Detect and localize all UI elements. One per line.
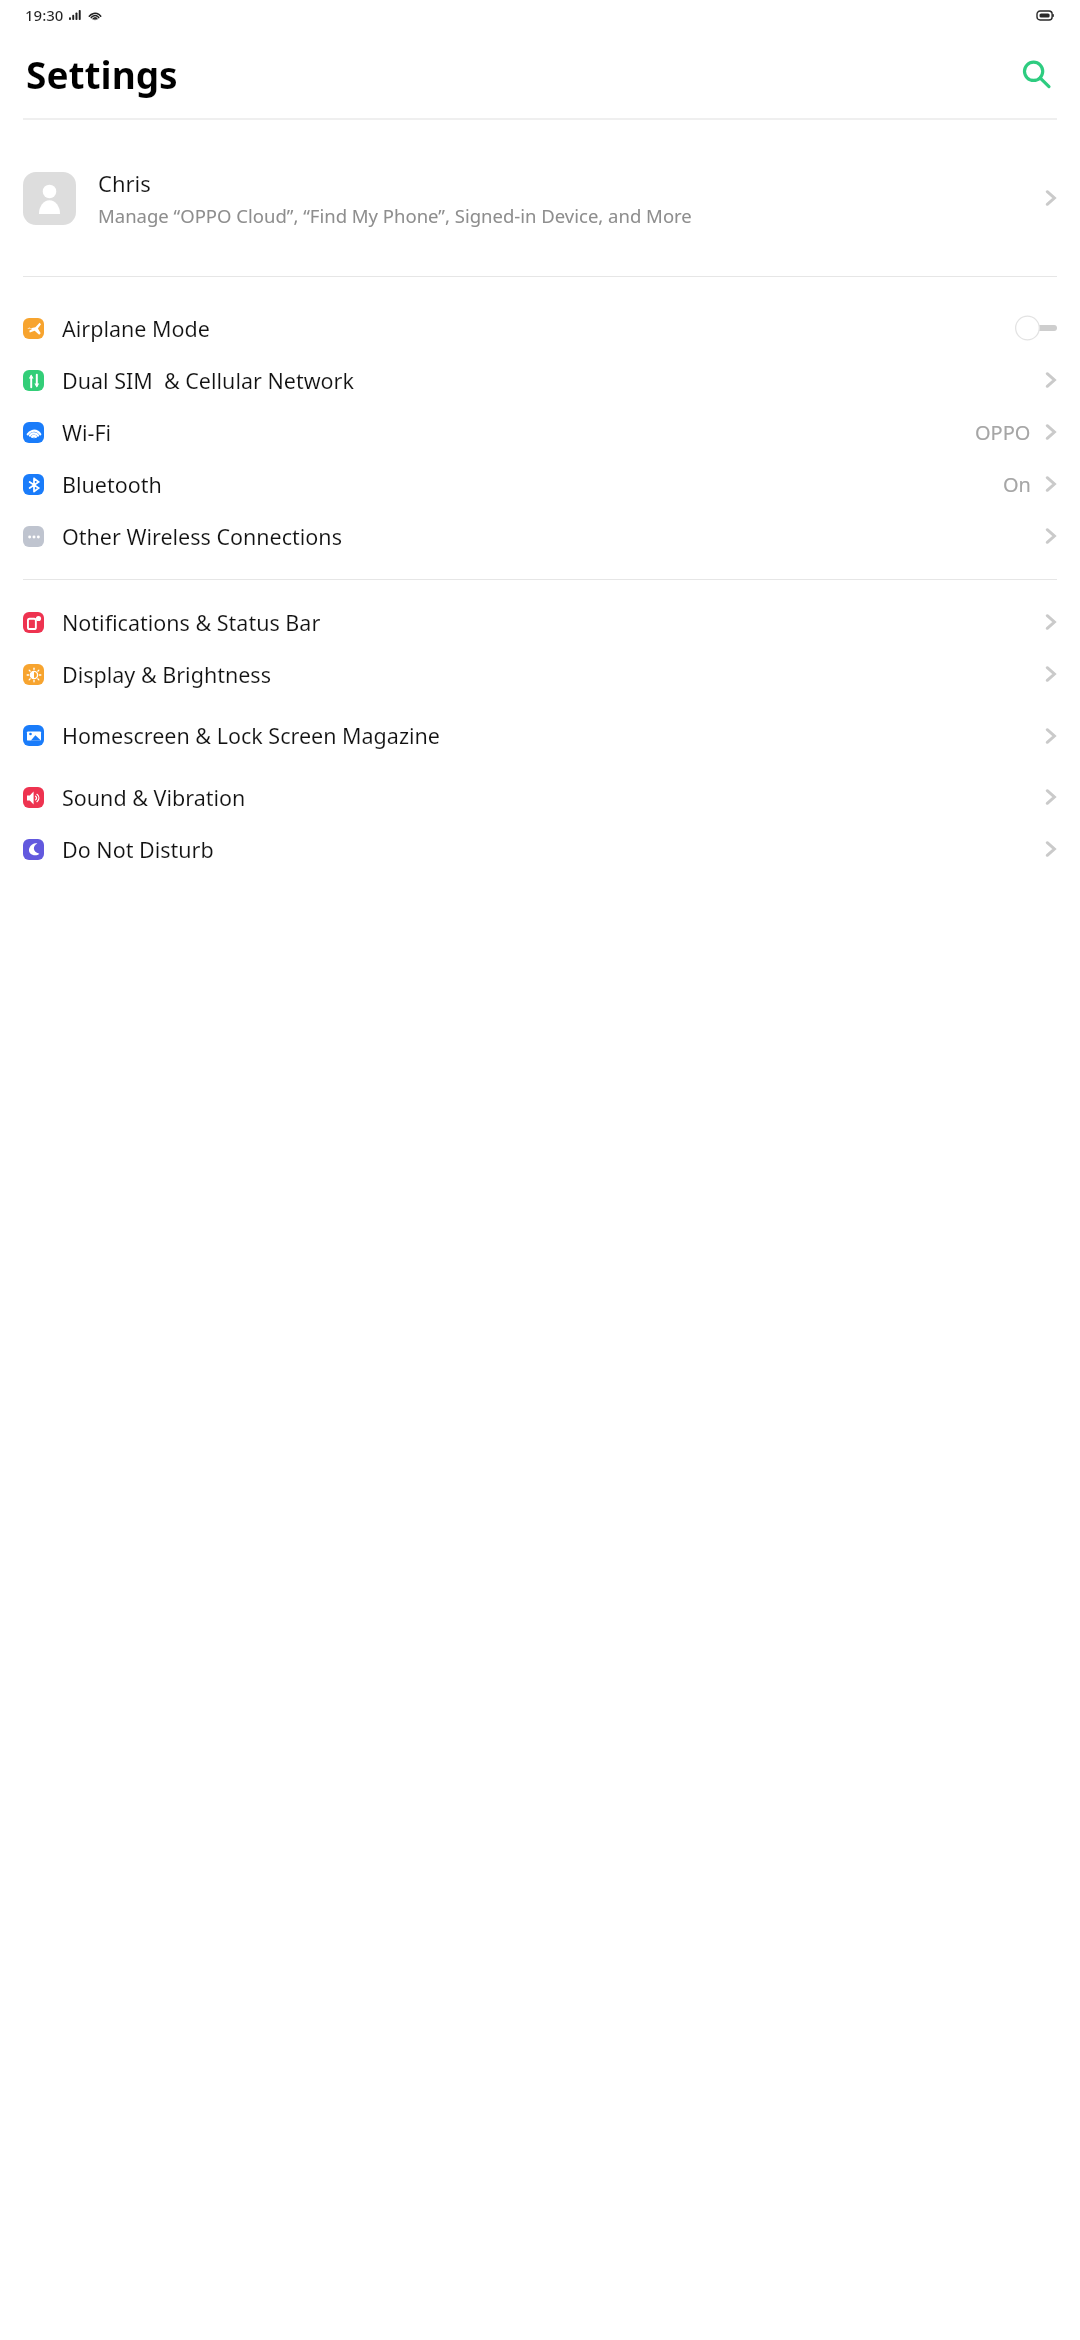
staticText: Sound & Vibration	[62, 783, 1044, 812]
button[interactable]: Search	[1013, 51, 1059, 97]
staticText: Notifications & Status Bar	[62, 608, 1044, 637]
staticText: Chris	[98, 168, 151, 198]
staticText: Bluetooth	[62, 470, 1003, 499]
button[interactable]: Wi-Fi	[0, 406, 1080, 458]
staticText: Dual SIM & Cellular Network	[62, 366, 1044, 395]
button[interactable]: Airplane Mode	[0, 302, 1080, 354]
staticText: On	[1003, 471, 1031, 498]
staticText: OPPO	[975, 419, 1031, 446]
staticText: Airplane Mode	[62, 314, 1015, 343]
staticText: Display & Brightness	[62, 660, 1044, 689]
staticText: Do Not Disturb	[62, 835, 1044, 864]
button[interactable]: Display & Brightness	[0, 648, 1080, 700]
staticText: Manage “OPPO Cloud”, “Find My Phone”, Si…	[98, 203, 692, 228]
button[interactable]: Notifications & Status Bar	[0, 596, 1080, 648]
staticText: Wi-Fi	[62, 418, 975, 447]
staticText: Settings	[26, 49, 178, 99]
button[interactable]: Other Wireless Connections	[0, 510, 1080, 562]
button[interactable]: Airplane Mode toggle	[1015, 315, 1057, 341]
button[interactable]: Chris	[0, 120, 1080, 276]
button[interactable]: Dual SIM & Cellular Network	[0, 354, 1080, 406]
staticText: 19:30	[25, 5, 64, 25]
button[interactable]: Homescreen & Lock Screen Magazine	[0, 700, 1080, 771]
button[interactable]: Sound & Vibration	[0, 771, 1080, 823]
button[interactable]: Bluetooth	[0, 458, 1080, 510]
button[interactable]: Do Not Disturb	[0, 823, 1080, 875]
staticText: Homescreen & Lock Screen Magazine	[62, 721, 1044, 750]
staticText: Other Wireless Connections	[62, 522, 1044, 551]
